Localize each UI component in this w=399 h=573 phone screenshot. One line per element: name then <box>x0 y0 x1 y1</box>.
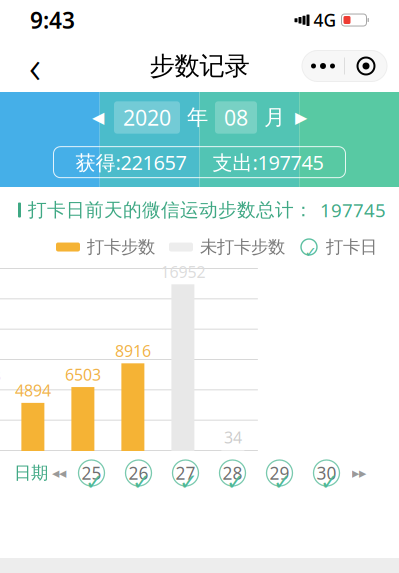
staticText: 27 <box>175 461 195 484</box>
staticText: 步数记录 <box>149 50 249 81</box>
staticText: 30 <box>316 461 336 484</box>
staticText: ▶ <box>295 108 307 127</box>
staticText: 4894 <box>15 380 51 401</box>
staticText: 2020 <box>123 103 171 132</box>
staticText: 28 <box>222 461 242 484</box>
staticText: 未打卡步数 <box>200 236 285 258</box>
staticText: 4G <box>313 8 336 31</box>
button[interactable]: 27 <box>162 456 209 490</box>
staticText: 9:43 <box>30 5 75 35</box>
staticText: ▸▸ <box>352 465 366 481</box>
staticText: 打卡步数 <box>87 236 155 258</box>
staticText: ✓ <box>320 469 339 495</box>
staticText: ✓ <box>85 469 104 495</box>
button[interactable]: 更多 <box>302 50 387 81</box>
button[interactable]: 29 <box>256 456 303 490</box>
staticText: 197745 <box>320 198 386 222</box>
staticText: 8916 <box>115 340 151 361</box>
staticText: 34 <box>224 427 242 448</box>
staticText: 月 <box>264 104 285 131</box>
staticText: 26 <box>128 461 148 484</box>
staticText: 16952 <box>160 261 205 282</box>
staticText: 29 <box>269 461 289 484</box>
staticText: 6393 <box>0 365 1 386</box>
staticText: 6503 <box>65 364 101 385</box>
staticText: ✓ <box>305 243 317 260</box>
staticText: 获得:221657 <box>75 149 186 175</box>
button[interactable]: 25 <box>68 456 115 490</box>
staticText: ◀ <box>92 108 104 127</box>
staticText: ◂◂ <box>52 465 66 481</box>
button[interactable]: 28 <box>209 456 256 490</box>
button[interactable]: 下一周 <box>350 461 368 485</box>
staticText: ✓ <box>179 469 198 495</box>
button[interactable]: 26 <box>115 456 162 490</box>
staticText: ✓ <box>132 469 151 495</box>
button[interactable]: 30 <box>303 456 350 490</box>
staticText: 08 <box>224 103 248 132</box>
staticText: 打卡日前天的微信运动步数总计： <box>28 198 313 221</box>
staticText: ✓ <box>226 469 245 495</box>
staticText: 年 <box>187 104 208 131</box>
button[interactable]: 下一月 <box>292 107 310 127</box>
button[interactable]: 返回 <box>12 43 58 89</box>
staticText: 25 <box>81 461 101 484</box>
staticText: ‹ <box>29 36 41 96</box>
button[interactable]: 上一周 <box>50 461 68 485</box>
staticText: 支出:197745 <box>212 149 323 175</box>
button[interactable]: 上一月 <box>89 107 107 127</box>
staticText: 打卡日 <box>326 236 377 258</box>
staticText: 日期 <box>14 462 48 484</box>
staticText: ✓ <box>273 469 292 495</box>
